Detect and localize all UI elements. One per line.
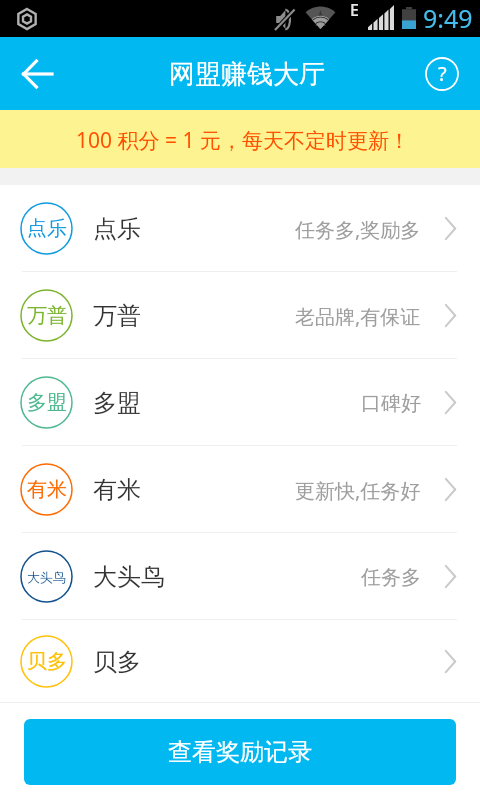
staticText: 查看奖励记录 [168,737,312,767]
button[interactable]: 万普 [0,272,480,358]
button[interactable]: 点乐 [0,185,480,271]
staticText: 大头鸟 [93,562,165,592]
staticText: 任务多,奖励多 [295,216,421,243]
button[interactable]: 查看奖励记录 [24,719,456,785]
staticText: 口碑好 [361,391,421,416]
button[interactable]: 贝多 [0,620,480,702]
staticText: 万普 [93,301,141,331]
button[interactable]: Help [425,57,459,91]
staticText: 大头鸟 [27,569,66,585]
staticText: 点乐 [93,214,141,244]
button[interactable]: 多盟 [0,359,480,445]
staticText: 老品牌,有保证 [295,303,421,330]
staticText: 更新快,任务好 [295,477,421,504]
staticText: 网盟赚钱大厅 [169,58,325,91]
staticText: 有米 [27,477,67,502]
staticText: 万普 [27,303,67,328]
button[interactable]: 有米 [0,446,480,532]
staticText: 有米 [93,475,141,505]
staticText: 9:49 [423,1,473,35]
staticText: 贝多 [27,649,67,674]
staticText: 贝多 [93,647,141,677]
staticText: 多盟 [93,388,141,418]
staticText: ? [438,60,447,87]
staticText: 任务多 [361,565,421,590]
staticText: 多盟 [27,390,67,415]
button[interactable]: Back [9,46,65,102]
staticText: E [350,0,359,21]
button[interactable]: 大头鸟 [0,533,480,619]
staticText: 100 积分 = 1 元，每天不定时更新！ [76,126,410,155]
staticText: 点乐 [27,216,67,241]
